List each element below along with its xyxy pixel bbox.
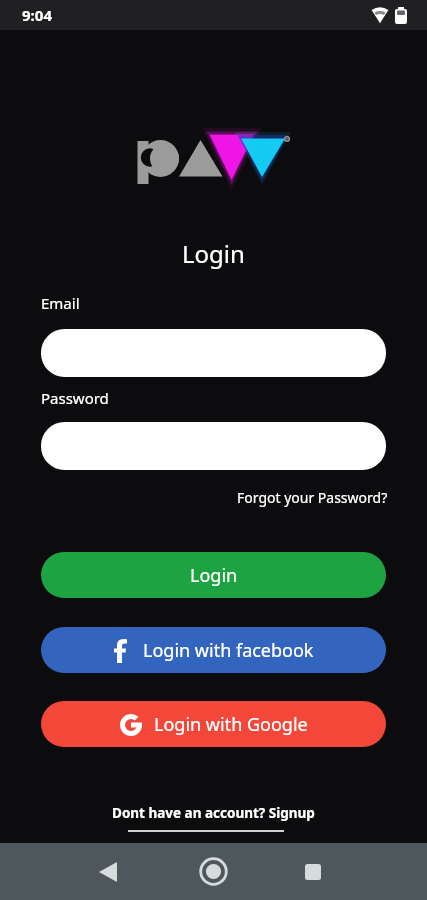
button[interactable] <box>99 862 117 882</box>
staticText: 9:04 <box>22 5 52 25</box>
button[interactable] <box>305 864 321 880</box>
button[interactable] <box>41 329 386 377</box>
staticText: Password <box>41 388 109 408</box>
button[interactable]: Login with facebook <box>41 627 386 673</box>
staticText: Login <box>182 237 245 270</box>
button[interactable]: Forgot your Password? <box>237 488 388 507</box>
button[interactable]: Dont have an account? Signup <box>112 804 315 822</box>
button[interactable] <box>200 858 227 885</box>
staticText: Login <box>190 563 238 588</box>
staticText: Login with Google <box>154 712 308 737</box>
button[interactable]: Login <box>41 552 386 598</box>
button[interactable] <box>41 422 386 470</box>
staticText: Email <box>41 293 80 313</box>
button[interactable]: Login with Google <box>41 701 386 747</box>
staticText: Login with facebook <box>143 638 314 663</box>
